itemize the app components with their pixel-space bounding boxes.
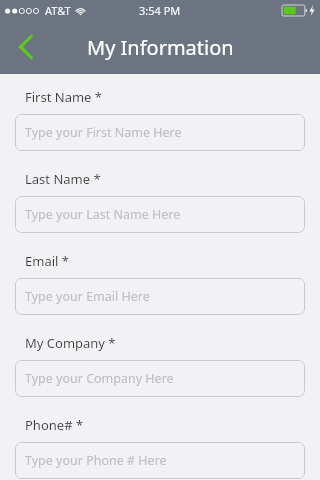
button[interactable]: Type your Email Here — [15, 278, 305, 315]
staticText: 3:54 PM — [139, 3, 181, 18]
button[interactable]: Back — [4, 20, 48, 74]
staticText: Email * — [25, 252, 69, 270]
staticText: My Company * — [25, 334, 116, 352]
staticText: Last Name * — [25, 170, 101, 188]
staticText: Type your Phone # Here — [25, 452, 167, 469]
staticText: Type your First Name Here — [25, 124, 182, 141]
button[interactable]: Type your First Name Here — [15, 114, 305, 151]
button[interactable]: Type your Company Here — [15, 360, 305, 397]
staticText: First Name * — [25, 88, 102, 106]
button[interactable]: Type your Phone # Here — [15, 442, 305, 479]
staticText: Type your Email Here — [25, 288, 150, 305]
button[interactable]: Type your Last Name Here — [15, 196, 305, 233]
staticText: Type your Company Here — [25, 370, 174, 387]
staticText: My Information — [87, 34, 234, 61]
staticText: Type your Last Name Here — [25, 206, 181, 223]
staticText: AT&T — [45, 3, 71, 18]
staticText: Phone# * — [25, 416, 84, 434]
